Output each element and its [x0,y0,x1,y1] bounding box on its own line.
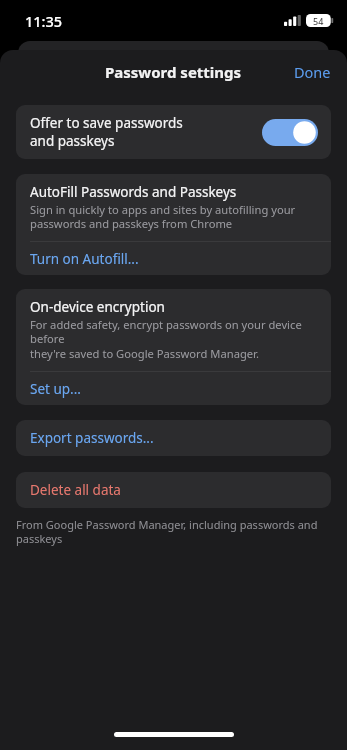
staticText: Done [294,62,331,82]
button[interactable]: Set up... [16,372,331,405]
staticText: 11:35 [25,11,63,31]
button[interactable]: Offer to save passwords and passkeys tog… [262,119,318,146]
staticText: Offer to save passwords and passkeys [30,114,262,150]
staticText: Turn on Autofill... [30,250,139,268]
staticText: On-device encryption [30,298,165,316]
button[interactable]: Turn on Autofill... [16,242,331,275]
staticText: Export passwords... [30,429,154,447]
staticText: Sign in quickly to apps and sites by aut… [30,202,296,232]
staticText: AutoFill Passwords and Passkeys [30,183,237,201]
button[interactable]: Offer to save passwords and passkeys [16,105,331,159]
staticText: From Google Password Manager, including … [16,517,318,547]
button[interactable]: Done [278,54,347,90]
staticText: Set up... [30,380,81,398]
staticText: 54 [313,15,324,27]
staticText: For added safety, encrypt passwords on y… [30,317,317,362]
staticText: Password settings [105,62,242,82]
button[interactable]: Delete all data [16,472,331,508]
button[interactable]: Export passwords... [16,420,331,456]
staticText: Delete all data [30,481,121,499]
